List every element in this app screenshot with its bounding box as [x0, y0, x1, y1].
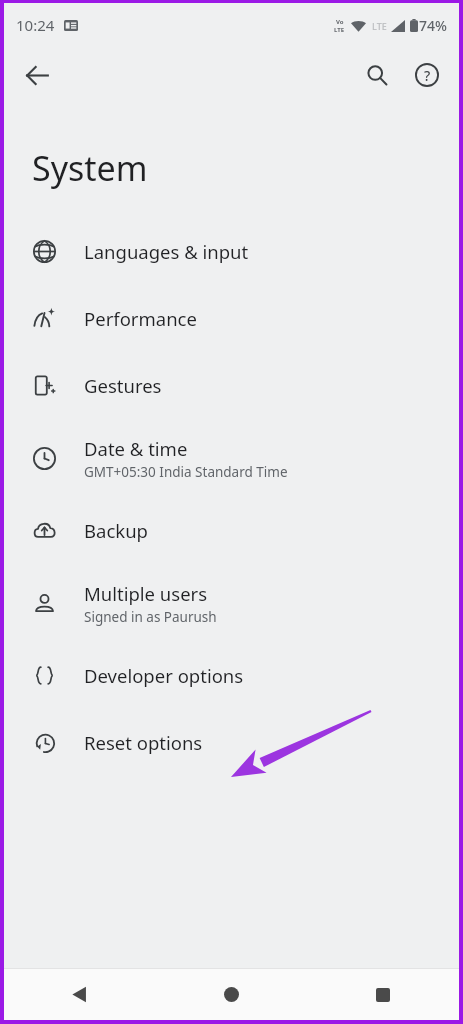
- staticText: Performance: [84, 306, 197, 331]
- staticText: ?: [424, 66, 431, 85]
- button[interactable]: Back: [13, 51, 61, 99]
- button[interactable]: Recents: [307, 969, 459, 1020]
- button[interactable]: Multiple users: [4, 564, 459, 642]
- staticText: Gestures: [84, 373, 162, 398]
- button[interactable]: Search: [353, 51, 401, 99]
- staticText: Reset options: [84, 730, 203, 755]
- button[interactable]: Back: [4, 969, 155, 1020]
- button[interactable]: Languages & input: [4, 218, 459, 285]
- button[interactable]: Developer options: [4, 642, 459, 709]
- staticText: Date & time: [84, 436, 188, 461]
- button[interactable]: Gestures: [4, 352, 459, 419]
- staticText: 10:24: [16, 15, 55, 35]
- staticText: Developer options: [84, 663, 244, 688]
- staticText: Languages & input: [84, 239, 249, 264]
- button[interactable]: Date & time: [4, 419, 459, 497]
- button[interactable]: Reset options: [4, 709, 459, 776]
- staticText: Vo: [336, 18, 344, 26]
- button[interactable]: Backup: [4, 497, 459, 564]
- staticText: GMT+05:30 India Standard Time: [84, 463, 288, 481]
- staticText: System: [32, 145, 148, 191]
- staticText: 74%: [419, 16, 447, 35]
- button[interactable]: Home: [155, 969, 307, 1020]
- staticText: LTE: [372, 20, 387, 32]
- staticText: Multiple users: [84, 581, 208, 606]
- button[interactable]: Performance: [4, 285, 459, 352]
- staticText: LTE: [334, 26, 345, 34]
- staticText: Signed in as Paurush: [84, 608, 217, 626]
- button[interactable]: Help: [403, 51, 451, 99]
- staticText: Backup: [84, 518, 148, 543]
